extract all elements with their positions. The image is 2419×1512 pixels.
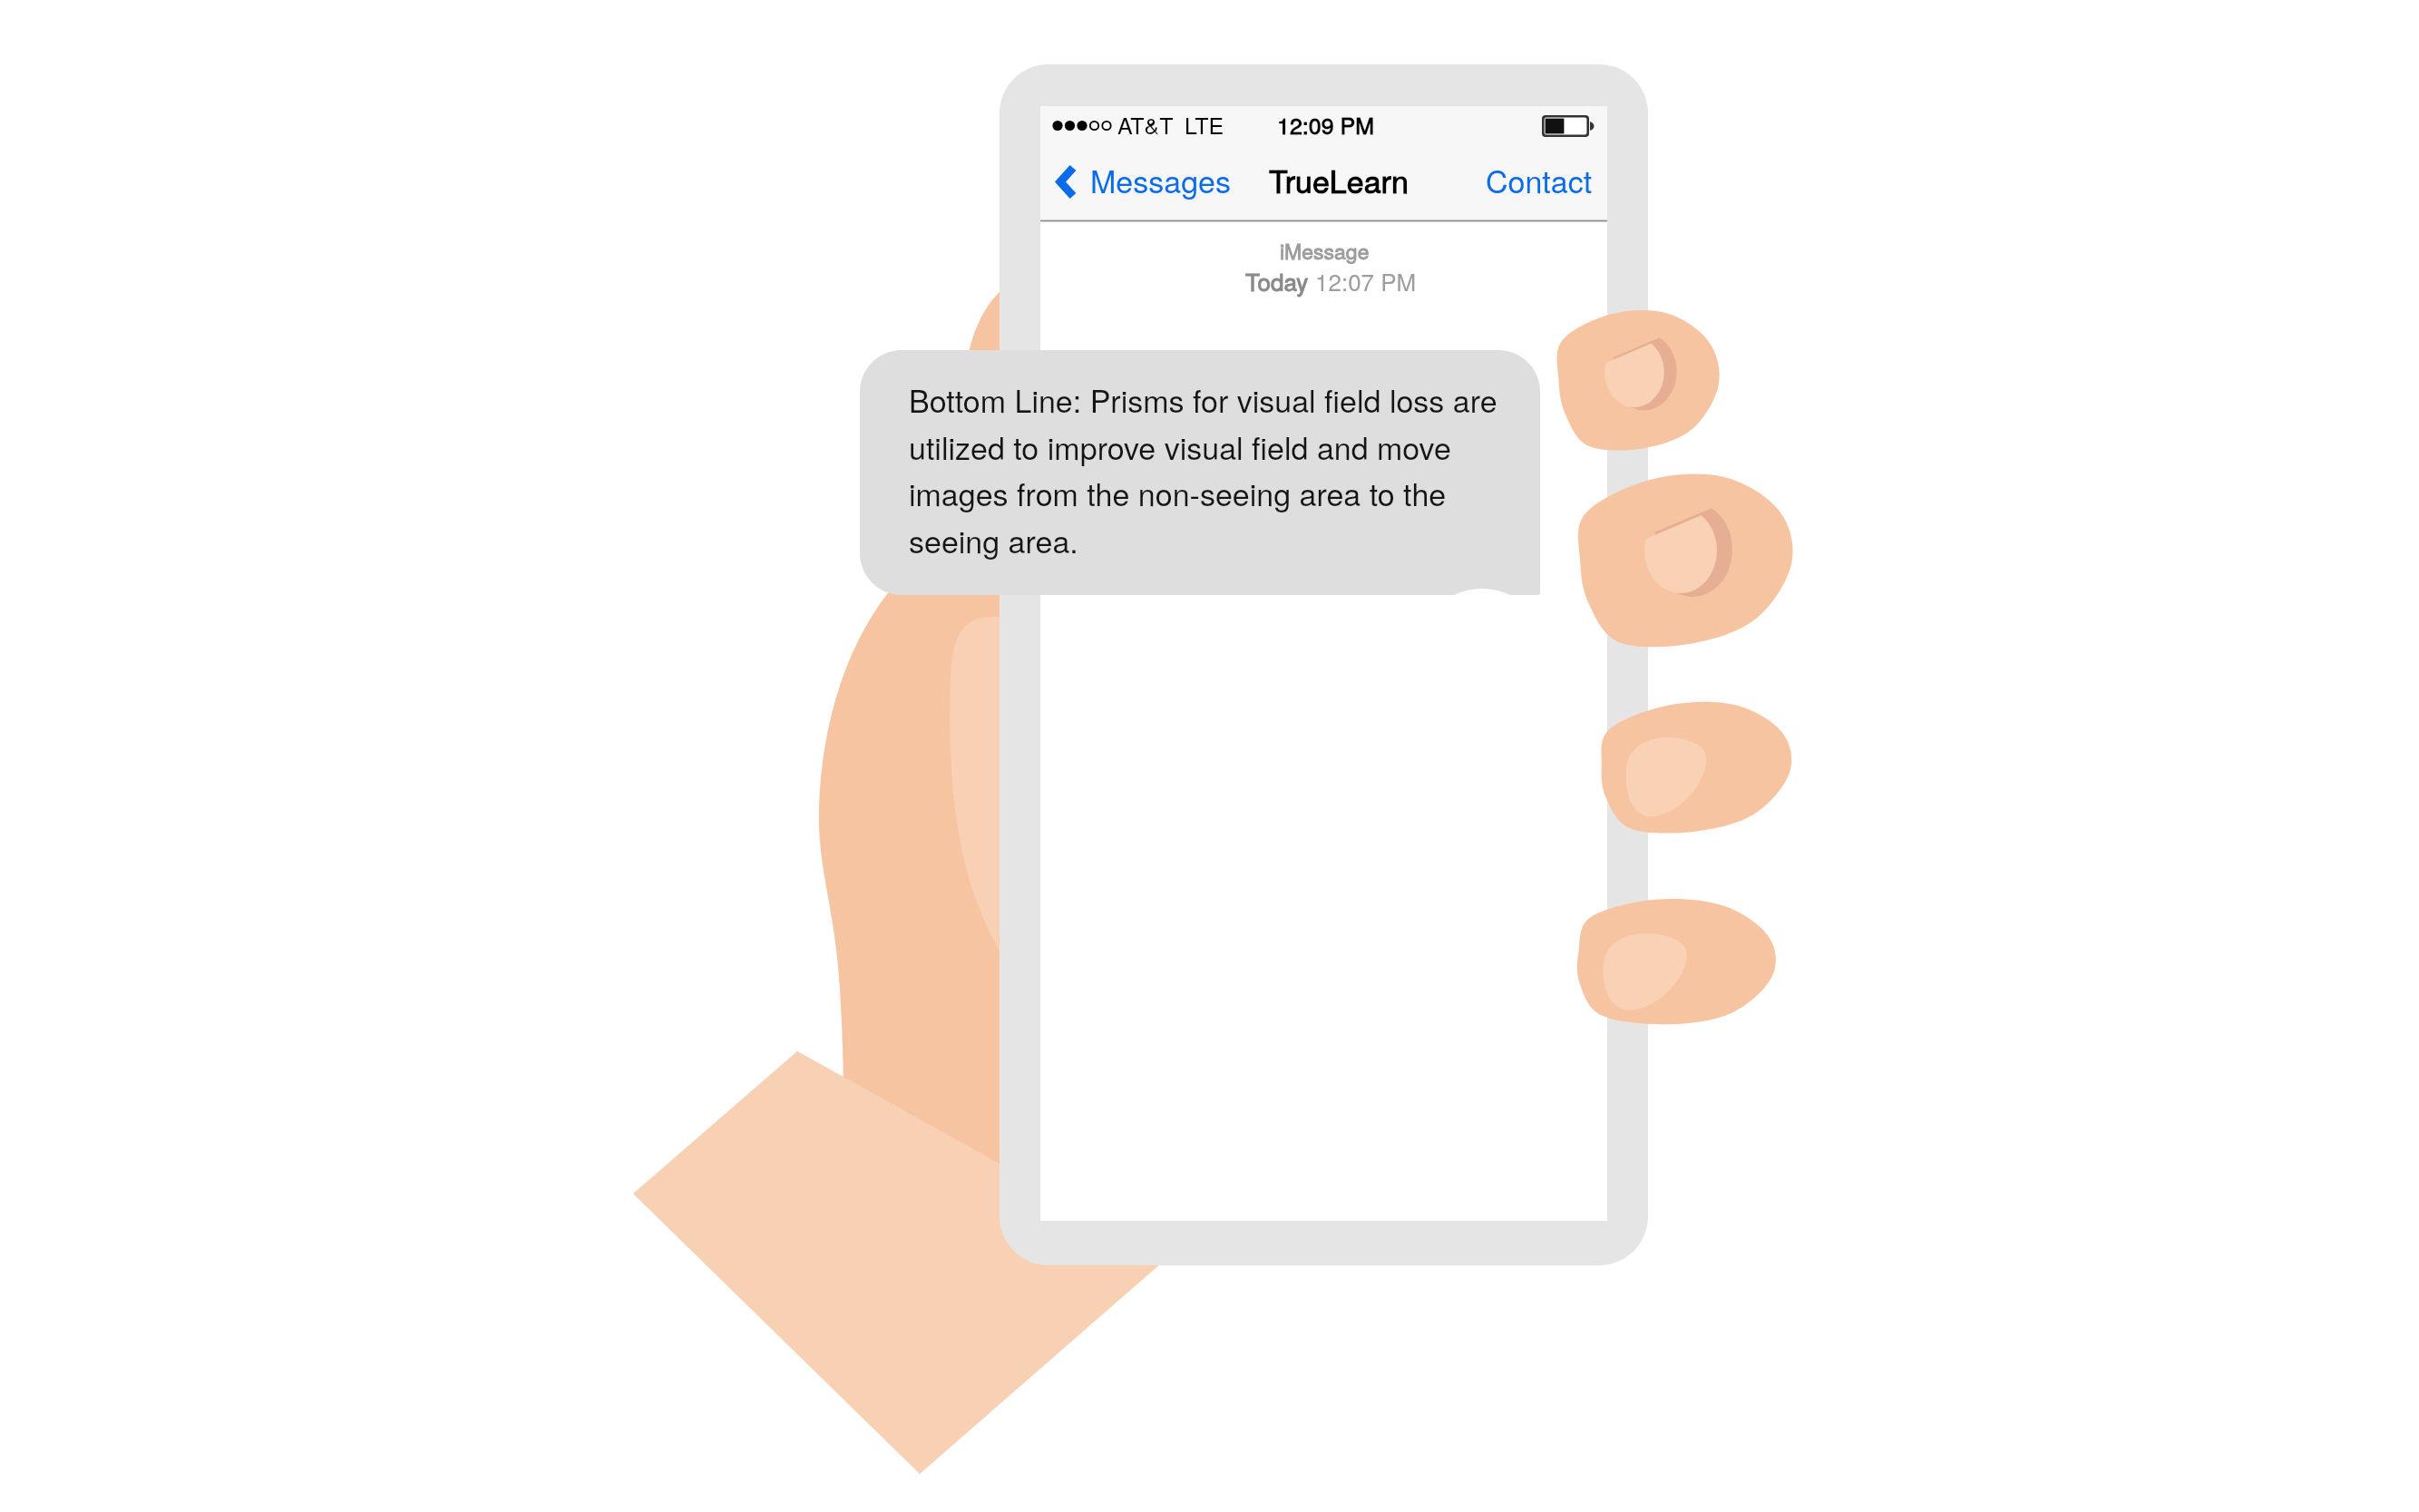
staticText: LTE — [1185, 108, 1224, 141]
staticText: AT&T — [1117, 108, 1174, 141]
button[interactable]: Bottom Line: Prisms for visual field los… — [860, 350, 1540, 595]
staticText: Bottom Line: Prisms for visual field los… — [909, 377, 1497, 422]
staticText: Today — [1245, 264, 1315, 298]
staticText: Messages — [1090, 158, 1231, 202]
staticText: seeing area. — [909, 518, 1078, 562]
staticText: TrueLearn — [1269, 158, 1409, 202]
button[interactable]: Back to Messages — [1050, 154, 1232, 210]
staticText: Contact — [1486, 158, 1593, 202]
staticText: 12:07 PM — [1315, 264, 1417, 298]
button[interactable]: Contact — [1478, 154, 1598, 205]
staticText: iMessage — [1280, 236, 1370, 266]
staticText: utilized to improve visual field and mov… — [909, 424, 1451, 469]
staticText: images from the non-seeing area to the — [909, 471, 1447, 515]
staticText: 12:09 PM — [1277, 108, 1375, 141]
